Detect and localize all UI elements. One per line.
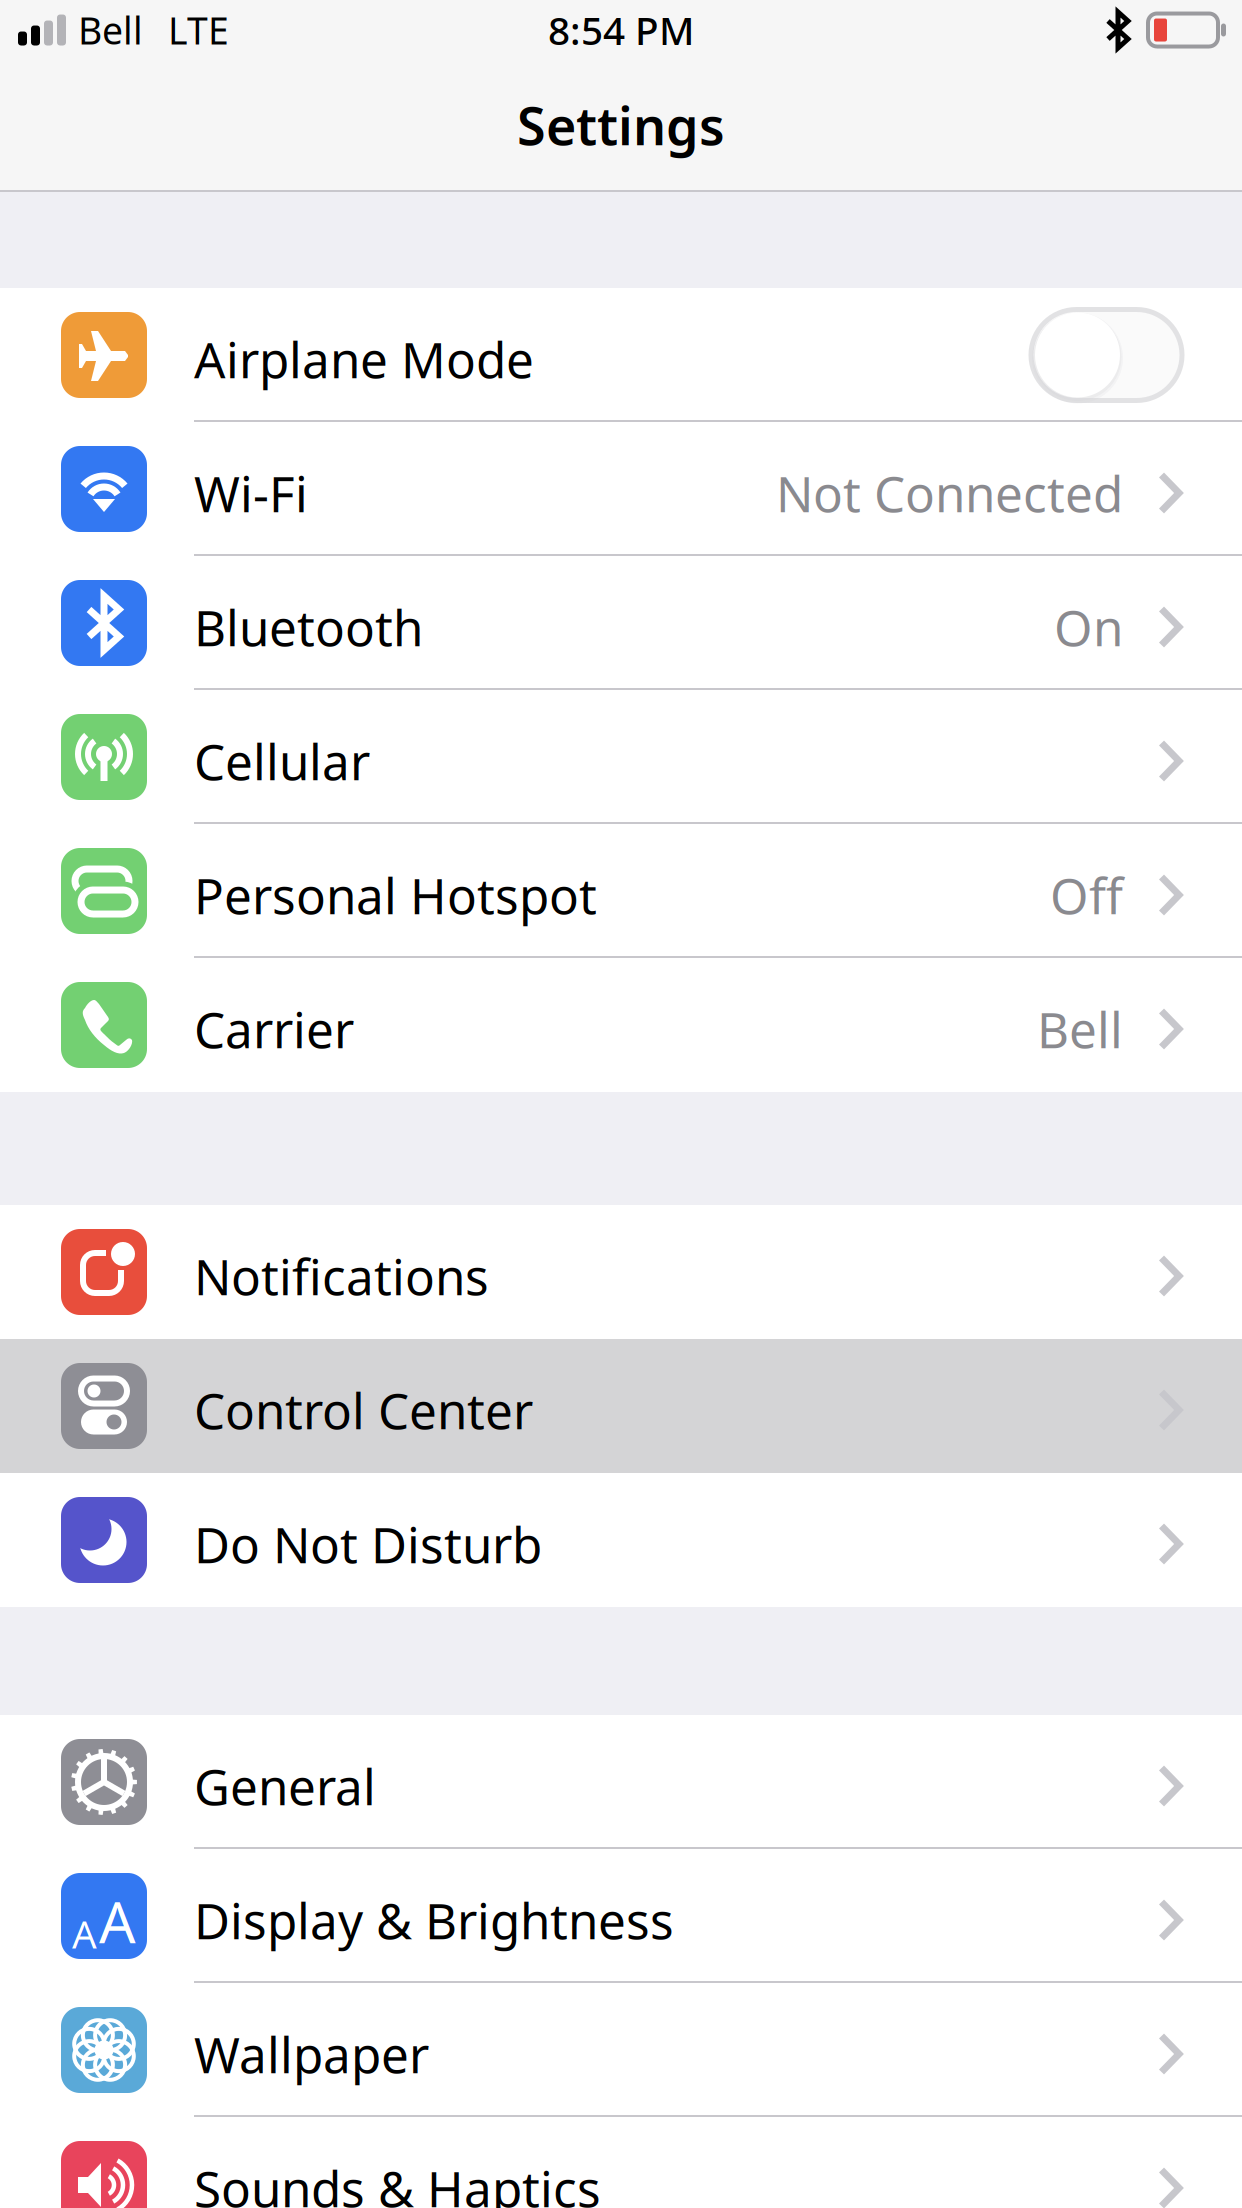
staticText: Not Connected — [776, 460, 1123, 526]
staticText: Bluetooth — [194, 594, 423, 660]
staticText: LTE — [168, 5, 229, 55]
staticText: Wallpaper — [194, 2021, 429, 2087]
staticText: Cellular — [194, 728, 370, 794]
staticText: A — [99, 1883, 136, 1959]
staticText: General — [194, 1753, 376, 1819]
staticText: 8:54 PM — [548, 4, 694, 56]
staticText: Do Not Disturb — [194, 1511, 542, 1577]
staticText: Display & Brightness — [194, 1887, 674, 1953]
staticText: Carrier — [194, 996, 354, 1062]
button[interactable]: Wallpaper — [0, 1983, 1242, 2117]
staticText: Sounds & Haptics — [194, 2155, 601, 2208]
button[interactable]: Cellular — [0, 690, 1242, 824]
staticText: Settings — [517, 90, 725, 160]
button[interactable]: Do Not Disturb — [0, 1473, 1242, 1607]
button[interactable]: Notifications — [0, 1205, 1242, 1339]
button[interactable]: Sounds & Haptics — [0, 2117, 1242, 2208]
button[interactable]: Control Center — [0, 1339, 1242, 1473]
staticText: Bell — [1037, 996, 1123, 1062]
staticText: Airplane Mode — [194, 326, 534, 392]
staticText: Notifications — [194, 1243, 489, 1309]
button[interactable]: Bluetooth — [0, 556, 1242, 690]
staticText: Bell — [78, 5, 143, 55]
staticText: Control Center — [194, 1377, 533, 1443]
staticText: Off — [1050, 862, 1123, 928]
button[interactable]: Carrier — [0, 958, 1242, 1092]
button[interactable]: A — [0, 1849, 1242, 1983]
button[interactable]: General — [0, 1715, 1242, 1849]
staticText: On — [1054, 594, 1123, 660]
button[interactable]: Personal Hotspot — [0, 824, 1242, 958]
button[interactable]: Airplane Mode — [0, 288, 1242, 422]
button[interactable]: Wi-Fi — [0, 422, 1242, 556]
staticText: Personal Hotspot — [194, 862, 597, 928]
staticText: A — [72, 1908, 97, 1959]
staticText: Wi-Fi — [194, 460, 308, 526]
